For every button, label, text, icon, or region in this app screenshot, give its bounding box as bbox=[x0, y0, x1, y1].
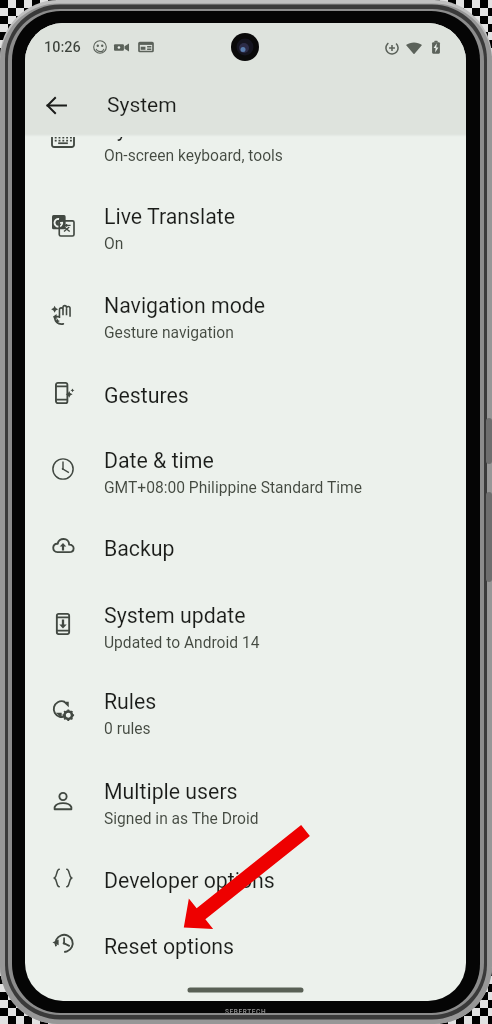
button[interactable]: Reset options bbox=[25, 920, 466, 986]
button[interactable]: Backup bbox=[25, 522, 466, 588]
staticText: GMT+08:00 Philippine Standard Time bbox=[104, 479, 362, 497]
button[interactable]: System update bbox=[25, 589, 466, 678]
staticText: System bbox=[107, 93, 177, 118]
staticText: Developer options bbox=[104, 868, 275, 893]
staticText: On bbox=[104, 235, 124, 253]
button[interactable]: Navigation mode bbox=[25, 279, 466, 368]
button[interactable]: Date & time bbox=[25, 434, 466, 523]
button[interactable]: Developer options bbox=[25, 854, 466, 920]
button[interactable]: Multiple users bbox=[25, 765, 466, 854]
button[interactable]: Live Translate bbox=[25, 190, 466, 279]
staticText: Multiple users bbox=[104, 779, 238, 804]
staticText: SEBERTECH bbox=[225, 1008, 267, 1016]
staticText: Updated to Android 14 bbox=[104, 634, 260, 652]
staticText: Reset options bbox=[104, 934, 235, 959]
button[interactable]: Gestures bbox=[25, 369, 466, 435]
staticText: Date & time bbox=[104, 448, 214, 473]
button[interactable]: Rules bbox=[25, 675, 466, 764]
staticText: Backup bbox=[104, 536, 175, 561]
button[interactable]: System bbox=[25, 102, 466, 191]
staticText: 0 rules bbox=[104, 720, 151, 738]
staticText: Gesture navigation bbox=[104, 324, 234, 342]
staticText: 10:26 bbox=[44, 39, 81, 56]
button[interactable]: Back bbox=[33, 82, 79, 128]
staticText: Navigation mode bbox=[104, 293, 266, 318]
staticText: Gestures bbox=[104, 383, 189, 408]
staticText: System update bbox=[104, 603, 246, 628]
staticText: On-screen keyboard, tools bbox=[104, 147, 283, 165]
staticText: Signed in as The Droid bbox=[104, 810, 259, 828]
staticText: System bbox=[104, 116, 175, 141]
staticText: Rules bbox=[104, 689, 157, 714]
staticText: Live Translate bbox=[104, 204, 236, 229]
